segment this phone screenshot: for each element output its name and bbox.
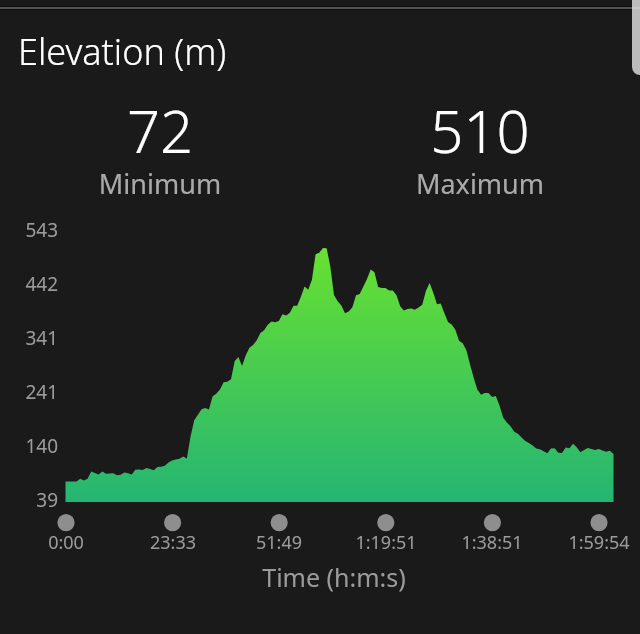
staticText: 1:19:51 xyxy=(316,530,456,555)
staticText: 1:38:51 xyxy=(422,530,562,555)
staticText: 543 xyxy=(25,217,58,243)
staticText: 51:49 xyxy=(209,530,349,555)
staticText: 0:00 xyxy=(0,530,136,555)
staticText: 510 xyxy=(320,91,640,170)
staticText: 341 xyxy=(25,325,58,351)
staticText: Minimum xyxy=(0,165,320,202)
staticText: 442 xyxy=(25,271,58,297)
staticText: 140 xyxy=(25,433,58,459)
staticText: 1:59:54 xyxy=(529,530,640,555)
button[interactable]: 510 xyxy=(320,91,640,195)
staticText: 72 xyxy=(0,91,320,170)
staticText: 23:33 xyxy=(103,530,243,555)
button[interactable]: Elevation profile chart xyxy=(65,222,614,503)
staticText: Maximum xyxy=(320,165,640,202)
staticText: Elevation (m) xyxy=(18,27,227,76)
staticText: 241 xyxy=(25,379,58,405)
staticText: 39 xyxy=(36,487,58,513)
other: Scroll position xyxy=(632,0,640,75)
staticText: Time (h:m:s) xyxy=(14,560,640,594)
button[interactable]: 72 xyxy=(0,91,320,195)
